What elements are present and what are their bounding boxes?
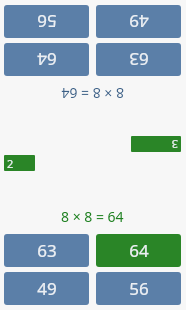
staticText: 56 (129, 277, 149, 300)
button[interactable]: 49 (96, 5, 181, 38)
staticText: 64 (37, 48, 57, 71)
staticText: 49 (37, 277, 57, 300)
staticText: 3 (171, 137, 178, 152)
button[interactable]: 64 (4, 43, 89, 76)
button[interactable]: 63 (4, 234, 89, 267)
button[interactable]: 56 (4, 5, 89, 38)
button[interactable]: 49 (4, 272, 89, 305)
staticText: 63 (37, 239, 57, 262)
staticText: 63 (129, 48, 149, 71)
button[interactable]: 64 (96, 234, 181, 267)
button[interactable]: 63 (96, 43, 181, 76)
button[interactable]: 56 (96, 272, 181, 305)
staticText: 8 × 8 = 64 (61, 207, 124, 226)
staticText: 56 (37, 10, 57, 33)
staticText: 8 × 8 = 64 (61, 84, 124, 103)
staticText: 49 (129, 10, 149, 33)
staticText: 2 (7, 156, 14, 171)
staticText: 64 (129, 239, 149, 262)
